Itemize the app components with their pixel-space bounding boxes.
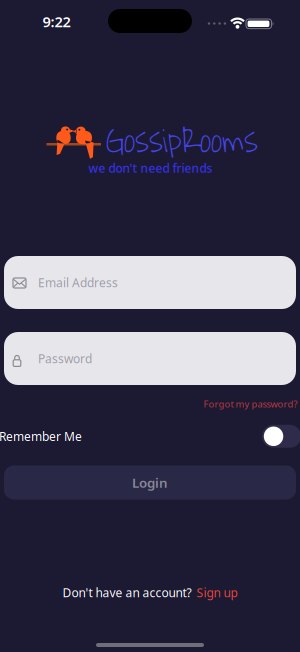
button[interactable] — [262, 425, 300, 448]
staticText: Login — [132, 474, 168, 491]
button[interactable]: Email Address — [4, 256, 296, 309]
staticText: Sign up — [196, 584, 237, 600]
button[interactable]: Login — [4, 465, 296, 499]
staticText: we don't need friends — [88, 160, 212, 176]
staticText: Email Address — [38, 274, 118, 290]
button[interactable]: Password — [4, 332, 296, 385]
staticText: Remember Me — [0, 428, 82, 444]
staticText: Forgot my password? — [203, 398, 297, 410]
staticText: GossipRooms — [106, 113, 258, 171]
staticText: 9:22 — [42, 12, 70, 31]
button[interactable]: Forgot my password? — [203, 398, 297, 410]
staticText: Password — [38, 350, 92, 366]
staticText: Don't have an account? — [62, 584, 191, 600]
button[interactable]: Sign up — [196, 584, 237, 600]
